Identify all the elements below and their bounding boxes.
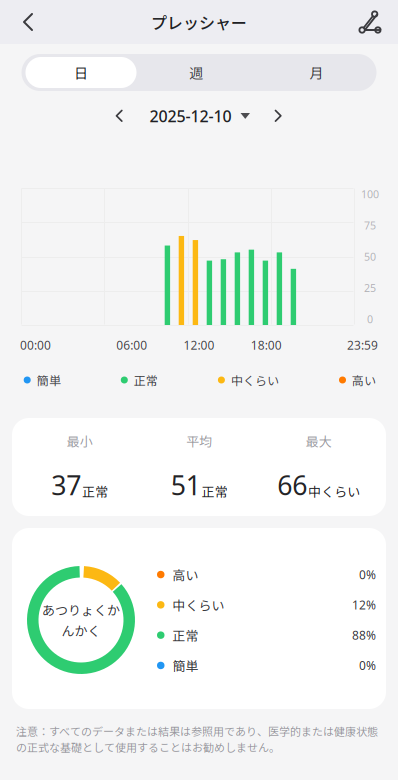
staticText: 週: [189, 62, 203, 83]
staticText: 最小: [67, 431, 93, 450]
staticText: 正常: [172, 626, 198, 644]
staticText: 75: [364, 218, 376, 232]
staticText: 0: [367, 312, 373, 326]
staticText: 23:59: [347, 337, 378, 353]
staticText: 中くらい: [308, 482, 360, 501]
staticText: 正常: [202, 482, 228, 501]
staticText: 平均: [186, 431, 212, 450]
staticText: 100: [361, 187, 379, 201]
staticText: んかく: [61, 621, 100, 640]
staticText: 中くらい: [231, 371, 279, 389]
staticText: 最大: [306, 431, 332, 450]
button[interactable]: 週: [136, 57, 256, 88]
staticText: 0%: [359, 657, 376, 673]
staticText: 正常: [82, 482, 108, 501]
staticText: 88%: [352, 627, 376, 643]
staticText: プレッシャー: [151, 10, 247, 34]
staticText: 50: [364, 249, 376, 264]
staticText: 25: [364, 281, 376, 295]
staticText: あつりょくか: [42, 600, 120, 619]
button[interactable]: 日: [25, 57, 136, 88]
staticText: 12:00: [183, 337, 214, 353]
staticText: 高い: [172, 565, 198, 584]
staticText: 簡単: [172, 656, 198, 675]
button[interactable]: Next day: [265, 103, 291, 129]
staticText: 中くらい: [172, 595, 224, 614]
button[interactable]: 月: [256, 57, 376, 88]
staticText: 51: [171, 467, 201, 503]
button[interactable]: Back: [6, 0, 50, 44]
staticText: 06:00: [116, 337, 147, 353]
staticText: 37: [51, 467, 81, 503]
staticText: 00:00: [20, 337, 51, 353]
staticText: 0%: [359, 567, 376, 582]
button[interactable]: Share: [348, 0, 392, 44]
staticText: 高い: [352, 371, 376, 389]
staticText: 注意：すべてのデータまたは結果は参照用であり、医学的または健康状態の正式な基礎と…: [16, 723, 378, 755]
staticText: 日: [74, 62, 88, 83]
staticText: 12%: [352, 597, 376, 613]
staticText: 2025-12-10: [149, 105, 231, 127]
button[interactable]: Previous day: [106, 103, 132, 129]
button[interactable]: 2025-12-10: [149, 105, 250, 127]
staticText: 月: [309, 62, 323, 83]
staticText: 66: [277, 467, 307, 503]
staticText: 18:00: [251, 337, 282, 353]
staticText: 正常: [134, 371, 158, 389]
staticText: 簡単: [37, 371, 61, 389]
